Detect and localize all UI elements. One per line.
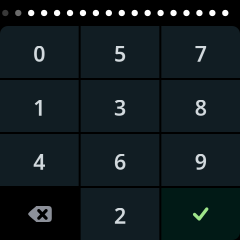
staticText: 2 <box>114 201 126 230</box>
button[interactable]: 2 <box>81 188 159 240</box>
button[interactable]: 6 <box>81 134 159 186</box>
button[interactable]: 0 <box>0 26 79 78</box>
staticText: 1 <box>33 93 45 122</box>
staticText: 7 <box>195 39 207 68</box>
button[interactable]: Confirm <box>161 188 240 240</box>
button[interactable]: Delete <box>0 188 79 240</box>
staticText: 8 <box>195 93 207 122</box>
button[interactable]: 4 <box>0 134 79 186</box>
staticText: 9 <box>195 147 207 176</box>
button[interactable]: 8 <box>161 80 240 132</box>
staticText: 5 <box>114 39 126 68</box>
staticText: 6 <box>114 147 126 176</box>
staticText: 3 <box>114 93 126 122</box>
button[interactable]: 9 <box>161 134 240 186</box>
button[interactable]: 7 <box>161 26 240 78</box>
button[interactable]: 3 <box>81 80 159 132</box>
button[interactable]: 5 <box>81 26 159 78</box>
staticText: 0 <box>33 39 45 68</box>
staticText: 4 <box>33 147 45 176</box>
button[interactable]: 1 <box>0 80 79 132</box>
